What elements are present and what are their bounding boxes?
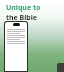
staticText: the Bible — [6, 13, 38, 23]
staticText: Unique to — [6, 3, 41, 13]
